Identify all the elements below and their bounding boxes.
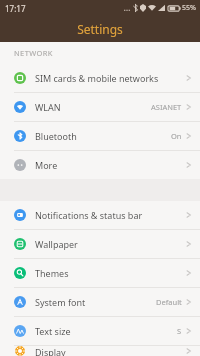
staticText: WLAN bbox=[35, 101, 61, 113]
staticText: On bbox=[171, 131, 182, 141]
staticText: Default bbox=[156, 297, 182, 307]
staticText: Settings bbox=[77, 21, 123, 37]
button[interactable]: Display bbox=[0, 346, 200, 356]
staticText: System font bbox=[35, 296, 86, 308]
staticText: 17:17 bbox=[5, 3, 26, 14]
staticText: Text size bbox=[35, 325, 71, 337]
button[interactable]: WLAN bbox=[0, 93, 200, 121]
button[interactable]: SIM cards & mobile networks bbox=[0, 64, 200, 92]
staticText: More bbox=[35, 159, 58, 171]
staticText: NETWORK bbox=[14, 48, 53, 58]
staticText: Bluetooth bbox=[35, 130, 77, 142]
staticText: Themes bbox=[35, 267, 69, 279]
button[interactable]: Bluetooth bbox=[0, 122, 200, 150]
staticText: Display bbox=[35, 346, 66, 356]
staticText: S bbox=[177, 326, 182, 336]
staticText: ASIANET bbox=[151, 102, 182, 112]
button[interactable]: More bbox=[0, 151, 200, 179]
staticText: Wallpaper bbox=[35, 238, 78, 250]
button[interactable]: System font bbox=[0, 288, 200, 316]
staticText: 55% bbox=[182, 3, 196, 13]
staticText: SIM cards & mobile networks bbox=[35, 72, 159, 84]
button[interactable]: Wallpaper bbox=[0, 230, 200, 258]
staticText: Notifications & status bar bbox=[35, 209, 143, 221]
button[interactable]: Themes bbox=[0, 259, 200, 287]
button[interactable]: Notifications & status bar bbox=[0, 201, 200, 229]
button[interactable]: Text size bbox=[0, 317, 200, 345]
